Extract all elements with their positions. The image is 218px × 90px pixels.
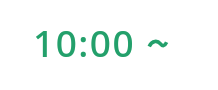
- staticText: 10:00: [33, 17, 136, 67]
- button[interactable]: 10:00: [0, 0, 218, 90]
